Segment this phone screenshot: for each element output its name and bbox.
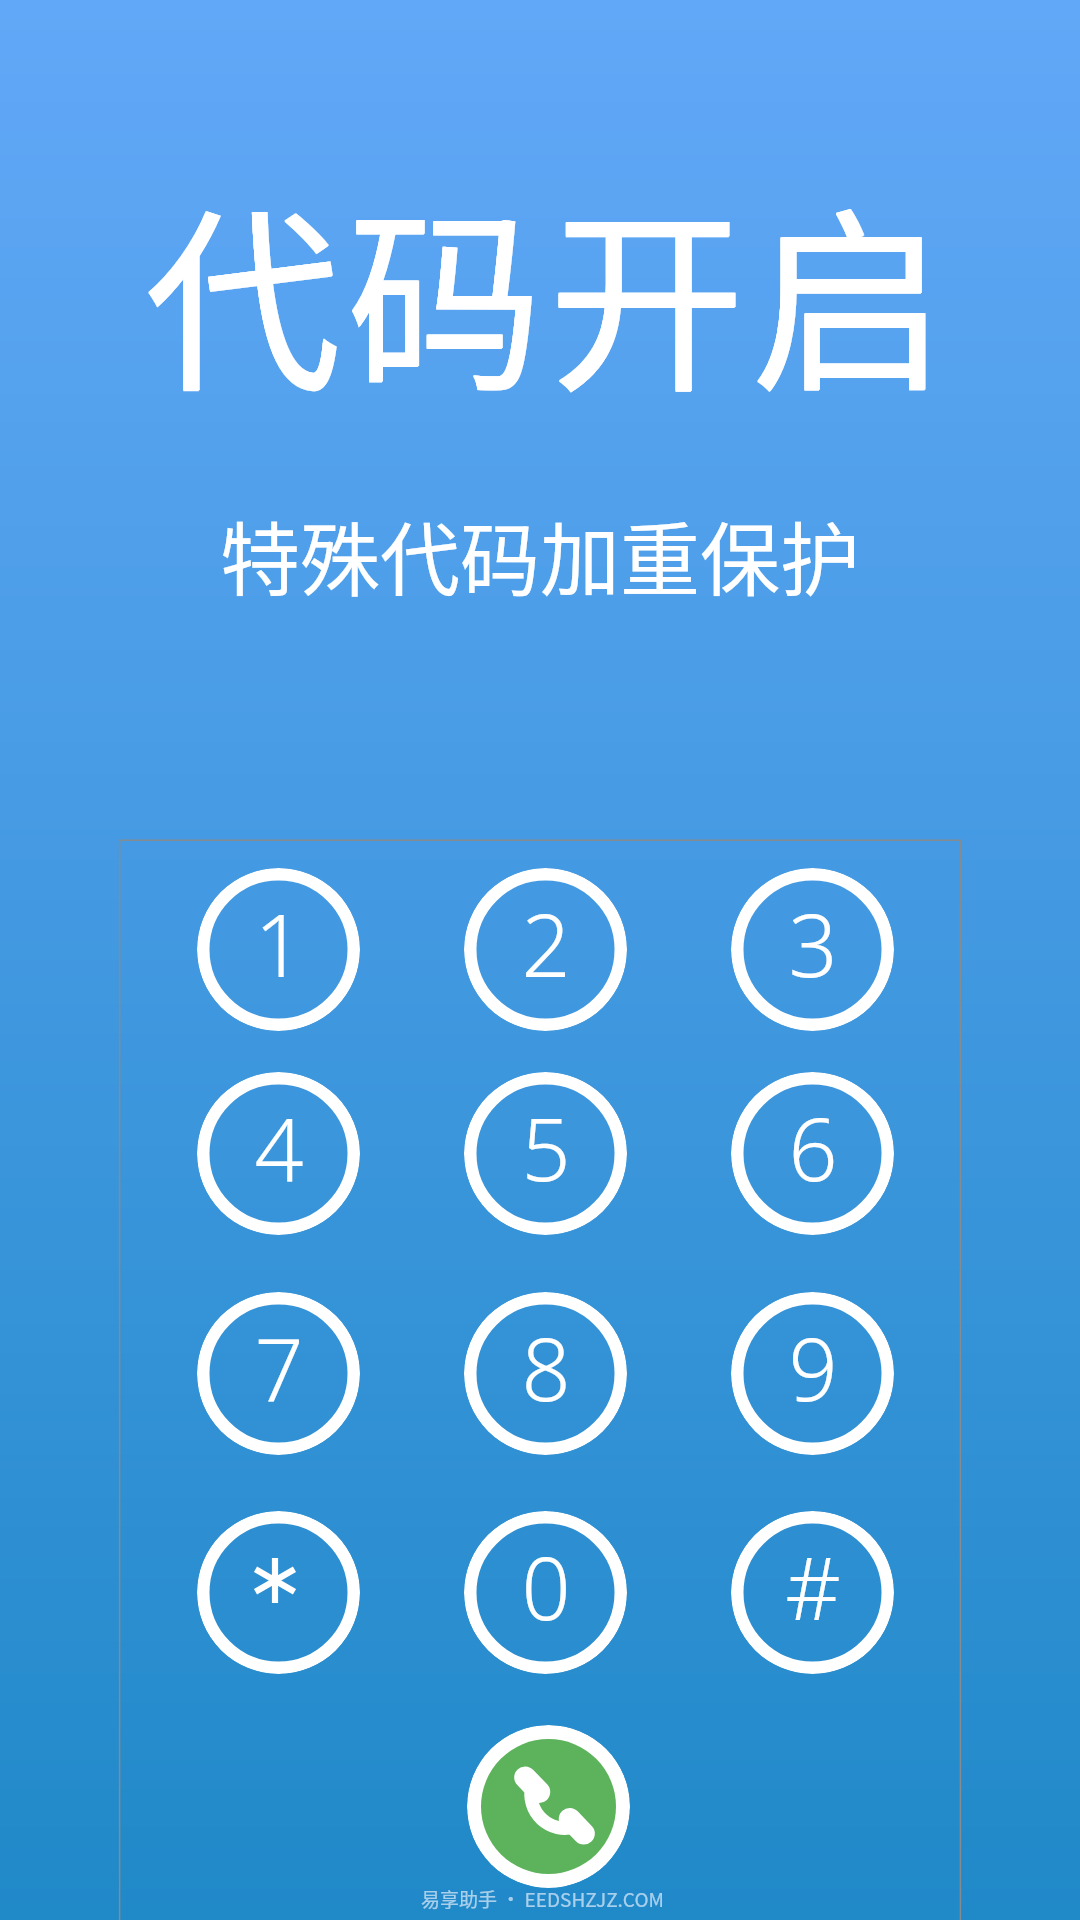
staticText: # (785, 1528, 841, 1645)
button[interactable]: Call (467, 1725, 630, 1888)
button[interactable]: 5 (464, 1072, 627, 1235)
staticText: 3 (788, 885, 838, 1002)
staticText: 9 (788, 1309, 838, 1426)
staticText: 8 (521, 1309, 571, 1426)
staticText: 代码开启 (144, 148, 953, 432)
button[interactable]: 7 (197, 1292, 360, 1455)
staticText: 代码开启 (145, 147, 954, 431)
staticText: 易享助手 • EEDSHZJZ.COM (421, 1885, 664, 1913)
staticText: 5 (521, 1089, 571, 1206)
staticText: 6 (788, 1089, 838, 1206)
staticText: 4 (254, 1089, 304, 1206)
button[interactable]: 6 (731, 1072, 894, 1235)
staticText: 代码开启 (144, 147, 953, 431)
button[interactable] (197, 1511, 360, 1674)
button[interactable]: 3 (731, 868, 894, 1031)
button[interactable]: 9 (731, 1292, 894, 1455)
staticText: 特殊代码加重保护 (220, 496, 860, 612)
button[interactable]: 0 (464, 1511, 627, 1674)
staticText: 1 (254, 885, 304, 1002)
button[interactable]: # (731, 1511, 894, 1674)
staticText: 7 (254, 1309, 304, 1426)
button[interactable]: 4 (197, 1072, 360, 1235)
staticText: 2 (521, 885, 571, 1002)
button[interactable]: 8 (464, 1292, 627, 1455)
staticText: 0 (521, 1528, 571, 1645)
button[interactable]: 1 (197, 868, 360, 1031)
button[interactable]: 2 (464, 868, 627, 1031)
